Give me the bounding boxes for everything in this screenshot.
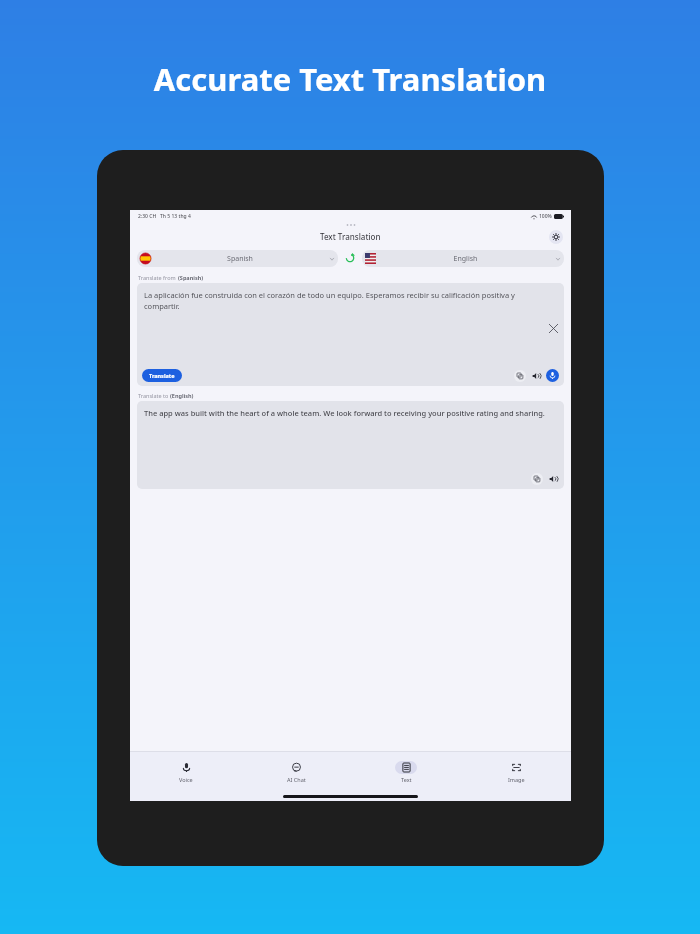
staticText: La aplicación fue construida con el cora… <box>144 290 550 311</box>
staticText: Text <box>401 776 412 783</box>
button[interactable]: Spanish <box>137 250 338 267</box>
button[interactable]: Image <box>461 752 571 792</box>
button[interactable]: Voice <box>130 752 241 792</box>
button[interactable]: Copy <box>514 370 526 382</box>
staticText: (Spanish) <box>178 274 204 281</box>
button[interactable]: English <box>362 250 564 267</box>
button[interactable]: Listen <box>547 473 559 485</box>
staticText: (English) <box>170 392 194 399</box>
staticText: Image <box>508 776 525 783</box>
button[interactable]: Text <box>351 752 461 792</box>
staticText: The app was built with the heart of a wh… <box>144 408 545 418</box>
button[interactable]: Copy <box>531 473 543 485</box>
staticText: 2:30 CH Th 5 13 thg 4 <box>138 213 191 220</box>
button[interactable]: Settings <box>549 230 563 244</box>
staticText: English <box>376 254 555 264</box>
staticText: Spanish <box>151 254 329 264</box>
staticText: Accurate Text Translation <box>0 58 700 100</box>
staticText: Translate to <box>138 392 170 399</box>
staticText: Translate <box>149 372 175 379</box>
staticText: AI Chat <box>287 776 306 783</box>
button[interactable]: AI Chat <box>241 752 351 792</box>
button[interactable]: Voice input <box>546 369 559 382</box>
button[interactable]: Clear text <box>549 324 558 333</box>
staticText: 100% <box>539 213 552 220</box>
staticText: Text Translation <box>320 231 381 242</box>
staticText: Voice <box>179 776 193 783</box>
button[interactable]: Listen <box>530 370 542 382</box>
button[interactable]: Swap languages <box>342 250 358 266</box>
button[interactable]: Translate <box>142 369 182 382</box>
staticText: Translate from <box>138 274 178 281</box>
